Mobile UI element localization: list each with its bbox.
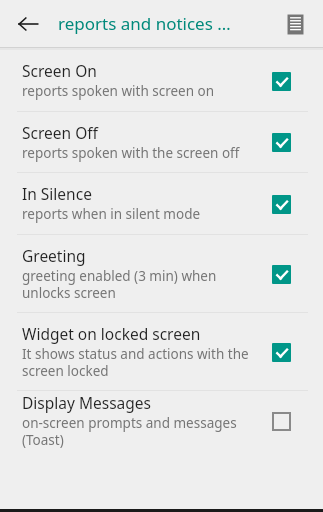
staticText: unlocks screen [22,285,116,302]
staticText: reports spoken with the screen off [22,145,240,162]
button[interactable]: Greeting, checked [264,257,298,291]
button[interactable]: Display Messages [0,391,323,451]
staticText: screen locked [22,363,109,380]
staticText: reports when in silent mode [22,206,201,223]
button[interactable]: More options [277,6,313,42]
button[interactable]: Widget on locked screen, checked [264,335,298,369]
staticText: Screen On [22,61,97,81]
button[interactable]: Screen On [0,50,323,111]
button[interactable]: In Silence, checked [264,187,298,221]
button[interactable]: Display Messages, unchecked [264,404,298,438]
button[interactable]: Screen Off, checked [264,125,298,159]
button[interactable]: Back [8,4,48,44]
staticText: It shows status and actions with the [22,346,249,363]
staticText: Widget on locked screen [22,324,201,344]
button[interactable]: Screen On, checked [264,64,298,98]
staticText: (Toast) [22,432,64,449]
staticText: In Silence [22,184,92,204]
button[interactable]: Screen Off [0,112,323,172]
staticText: Screen Off [22,123,98,143]
staticText: reports and notices … [58,12,231,35]
button[interactable]: Greeting [0,235,323,312]
staticText: Display Messages [22,393,151,413]
staticText: reports spoken with screen on [22,83,215,100]
staticText: on-screen prompts and messages [22,415,237,432]
staticText: Greeting [22,246,86,266]
button[interactable]: In Silence [0,173,323,234]
staticText: greeting enabled (3 min) when [22,268,217,285]
button[interactable]: Widget on locked screen [0,313,323,390]
